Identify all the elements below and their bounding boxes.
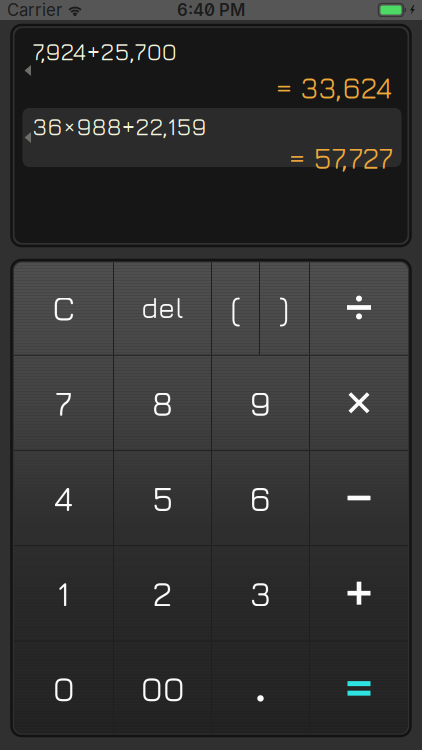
staticText: ( bbox=[230, 287, 240, 328]
staticText: 7,924+25,700 bbox=[32, 37, 176, 65]
staticText: Carrier bbox=[7, 0, 62, 20]
button[interactable] bbox=[212, 356, 309, 450]
button[interactable]: 7,924+25,700 bbox=[22, 33, 401, 108]
button[interactable]: Multiply bbox=[310, 356, 408, 450]
staticText: 6 bbox=[249, 477, 271, 518]
button[interactable] bbox=[114, 356, 211, 450]
staticText: 1 bbox=[57, 573, 70, 614]
button[interactable]: Plus bbox=[310, 546, 408, 640]
button[interactable]: Divide bbox=[310, 260, 408, 355]
button[interactable] bbox=[14, 356, 113, 450]
staticText: del bbox=[141, 291, 184, 324]
staticText: 4 bbox=[53, 477, 73, 518]
button[interactable] bbox=[212, 546, 309, 640]
button[interactable] bbox=[114, 451, 211, 545]
button[interactable] bbox=[212, 260, 259, 355]
button[interactable]: Decimal point bbox=[212, 641, 309, 735]
staticText: 00 bbox=[140, 668, 184, 709]
button[interactable] bbox=[14, 260, 113, 355]
staticText: 6:40 PM bbox=[177, 0, 245, 20]
staticText: C bbox=[52, 287, 75, 328]
staticText: ) bbox=[279, 287, 289, 328]
button[interactable] bbox=[114, 260, 211, 355]
staticText: = 33,624 bbox=[275, 70, 392, 105]
staticText: 5 bbox=[152, 477, 173, 518]
button[interactable]: Minus bbox=[310, 451, 408, 545]
staticText: 36×988+22,159 bbox=[32, 112, 206, 140]
button[interactable] bbox=[114, 641, 211, 735]
button[interactable] bbox=[14, 451, 113, 545]
staticText: 3 bbox=[250, 573, 271, 614]
staticText: 2 bbox=[152, 573, 172, 614]
button[interactable] bbox=[212, 451, 309, 545]
button[interactable] bbox=[114, 546, 211, 640]
button[interactable] bbox=[260, 260, 309, 355]
staticText: 7 bbox=[55, 382, 72, 423]
staticText: = 57,727 bbox=[288, 140, 392, 175]
button[interactable] bbox=[14, 641, 113, 735]
staticText: 9 bbox=[249, 382, 271, 423]
button[interactable] bbox=[14, 546, 113, 640]
button[interactable]: Equals bbox=[310, 641, 408, 735]
button[interactable]: 36×988+22,159 bbox=[22, 108, 401, 167]
staticText: 0 bbox=[52, 668, 74, 709]
staticText: 8 bbox=[151, 382, 173, 423]
